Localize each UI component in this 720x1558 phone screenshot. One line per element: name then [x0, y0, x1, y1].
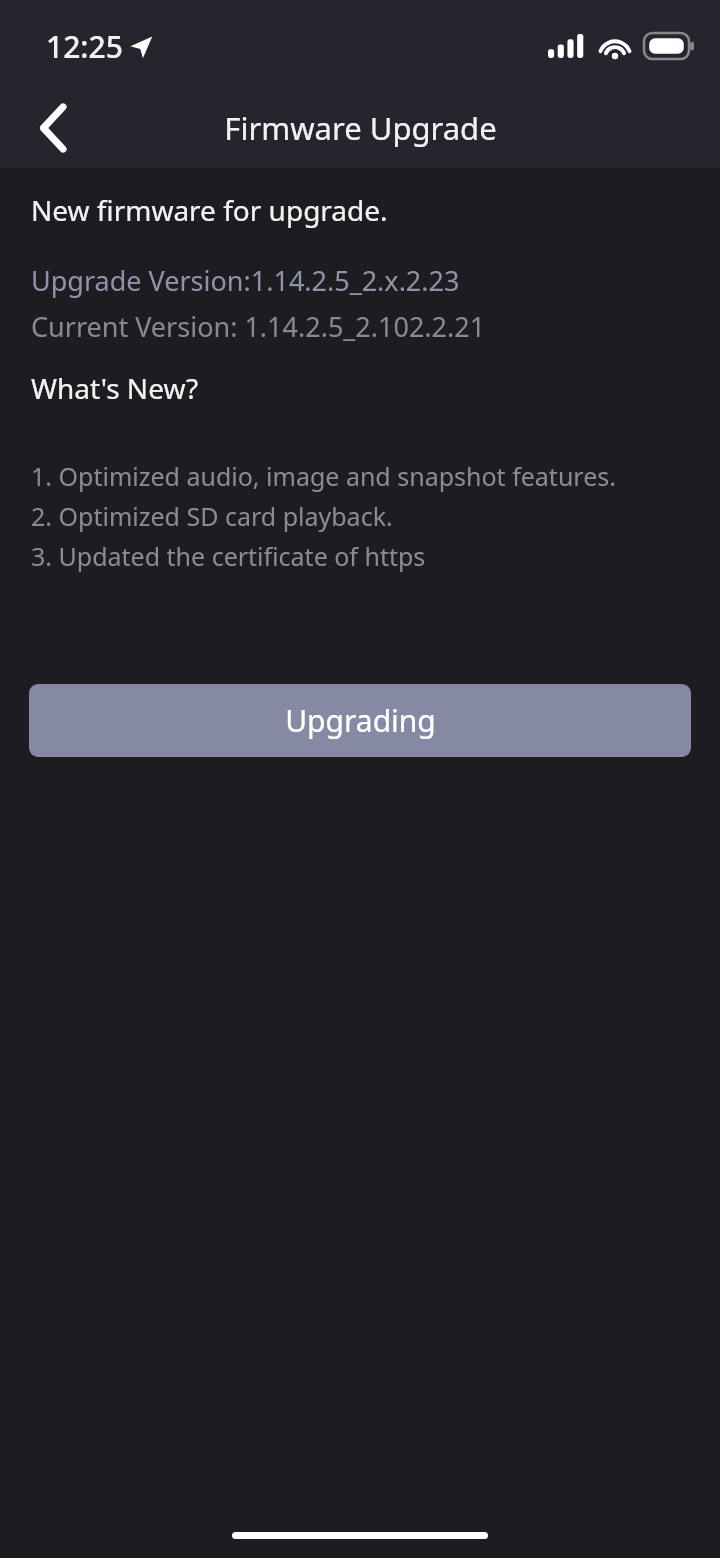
staticText: 12:25 — [46, 26, 123, 67]
button[interactable]: Upgrading — [29, 684, 691, 757]
staticText: 3. Updated the certificate of https — [31, 539, 426, 573]
staticText: Upgrading — [285, 700, 436, 741]
staticText: 1. Optimized audio, image and snapshot f… — [31, 459, 616, 493]
staticText: Firmware Upgrade — [224, 107, 497, 149]
staticText: What's New? — [31, 369, 199, 407]
staticText: Current Version: 1.14.2.5_2.102.2.21 — [31, 308, 486, 345]
staticText: New firmware for upgrade. — [31, 191, 388, 229]
button[interactable]: Back — [14, 88, 92, 168]
staticText: Upgrade Version:1.14.2.5_2.x.2.23 — [31, 262, 460, 299]
staticText: 2. Optimized SD card playback. — [31, 499, 393, 533]
